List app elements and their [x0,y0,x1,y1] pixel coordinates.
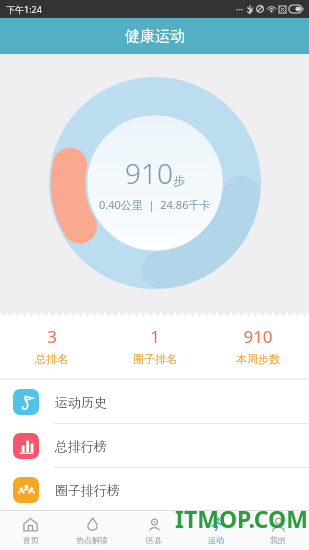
staticText: 圈子排行榜 [55,482,120,498]
button[interactable]: 1 [103,325,206,366]
button[interactable]: 运动 [185,511,247,550]
staticText: 总排名 [35,352,68,366]
staticText: 区县 [146,535,162,545]
staticText: 910 [125,154,173,192]
button[interactable]: 首页 [0,511,61,550]
staticText: 步 [173,173,185,188]
button[interactable]: 910 [206,325,309,366]
staticText: 0.40公里 | 24.86千卡 [99,197,211,212]
button[interactable]: 总排行榜 [0,424,309,467]
button[interactable]: 圈子排行榜 [0,468,309,511]
staticText: 运动 [208,535,224,545]
button[interactable]: 运动历史 [0,380,309,423]
staticText: 1 [150,325,160,348]
staticText: 3 [47,325,57,348]
staticText: 本周步数 [236,352,280,366]
staticText: 首页 [23,535,39,545]
button[interactable]: 3 [0,325,103,366]
staticText: 运动历史 [55,394,107,410]
staticText: ··· [236,3,244,15]
staticText: 我的 [270,535,286,545]
button[interactable]: 我的 [247,511,309,550]
staticText: 下午1:24 [6,3,42,15]
button[interactable]: 热点解读 [61,511,123,550]
staticText: 910 [243,325,273,348]
staticText: 总排行榜 [55,438,107,454]
staticText: 健康运动 [125,27,185,46]
staticText: 热点解读 [76,535,108,545]
staticText: 圈子排名 [133,352,177,366]
staticText: ITMOP.COM [175,503,308,534]
button[interactable]: 区县 [123,511,185,550]
